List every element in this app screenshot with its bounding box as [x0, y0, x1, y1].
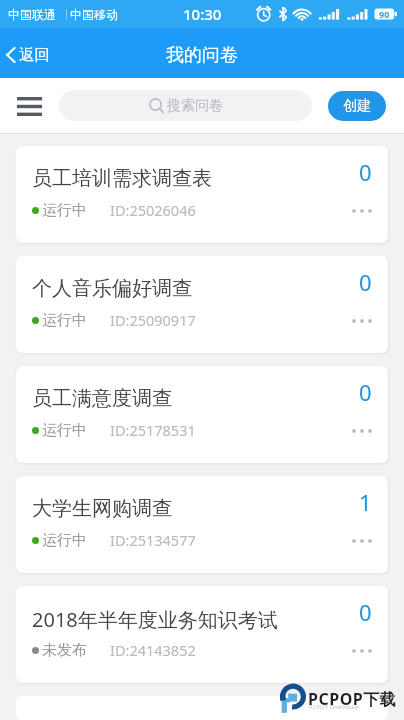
staticText: 0	[359, 377, 372, 407]
staticText: ID:25026046	[110, 200, 196, 220]
staticText: 运行中	[42, 531, 87, 550]
button[interactable]: 个人音乐偏好调查	[16, 256, 388, 353]
button[interactable]: More options	[347, 531, 377, 551]
staticText: 1	[359, 487, 372, 517]
button[interactable]: 大学生网购调查	[16, 476, 388, 573]
staticText: 返回	[19, 45, 50, 65]
staticText: 创建	[343, 97, 371, 115]
staticText: 中国联通	[8, 7, 56, 22]
button[interactable]	[16, 696, 388, 720]
staticText: 大学生网购调查	[32, 496, 172, 521]
staticText: PCPOP Download	[309, 703, 359, 710]
staticText: 0	[359, 267, 372, 297]
button[interactable]: 搜索问卷	[59, 90, 312, 121]
staticText: 2018年半年度业务知识考试	[32, 606, 278, 633]
staticText: ID:24143852	[110, 640, 196, 660]
button[interactable]: More options	[347, 421, 377, 441]
staticText: 员工满意度调查	[32, 386, 172, 411]
staticText: 10:30	[183, 4, 222, 24]
button[interactable]: 返回	[0, 37, 60, 73]
staticText: 0	[359, 597, 372, 627]
staticText: 运行中	[42, 421, 87, 440]
button[interactable]: 员工满意度调查	[16, 366, 388, 463]
staticText: 未发布	[42, 641, 87, 660]
button[interactable]: More options	[347, 641, 377, 661]
staticText: ID:25090917	[110, 310, 196, 330]
staticText: 个人音乐偏好调查	[32, 276, 192, 301]
staticText: 我的问卷	[166, 44, 238, 67]
button[interactable]: 员工培训需求调查表	[16, 146, 388, 243]
staticText: 90	[379, 8, 390, 20]
staticText: 中国移动	[70, 7, 118, 22]
button[interactable]: Menu	[10, 87, 48, 125]
staticText: PCPOP下载	[308, 688, 397, 710]
staticText: ID:25134577	[110, 530, 196, 550]
button[interactable]: More options	[347, 201, 377, 221]
staticText: ID:25178531	[110, 420, 196, 440]
button[interactable]: More options	[347, 311, 377, 331]
staticText: 0	[359, 157, 372, 187]
button[interactable]: 2018年半年度业务知识考试	[16, 586, 388, 683]
staticText: 员工培训需求调查表	[32, 166, 212, 191]
staticText: 运行中	[42, 201, 87, 220]
staticText: 搜索问卷	[167, 97, 223, 115]
button[interactable]: 创建	[328, 91, 386, 121]
staticText: 运行中	[42, 311, 87, 330]
